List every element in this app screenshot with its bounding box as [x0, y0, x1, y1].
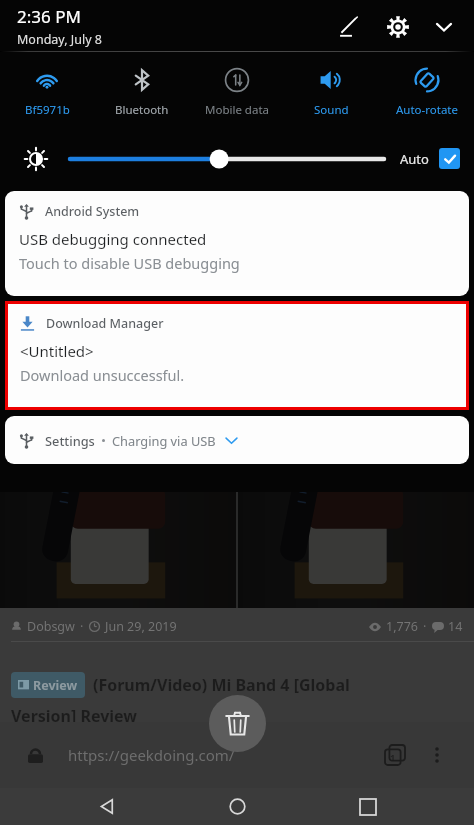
staticText: Monday, July 8	[17, 31, 102, 48]
staticText: Review	[33, 677, 78, 694]
staticText: USB debugging connected	[19, 229, 207, 249]
button[interactable]: Bluetooth	[94, 53, 189, 131]
button[interactable]: Android System	[5, 191, 469, 296]
staticText: Version] Review	[11, 705, 138, 727]
button[interactable]: Review	[11, 672, 85, 698]
button[interactable]: Bf5971b	[0, 53, 94, 131]
staticText: Dobsgw	[27, 618, 75, 635]
staticText: Download unsuccessful.	[20, 365, 185, 385]
button[interactable]: https://geekdoing.com/	[68, 745, 378, 765]
button[interactable]: Settings	[378, 7, 418, 47]
button[interactable]: Settings	[5, 416, 469, 464]
button[interactable]: Edit	[328, 7, 368, 47]
button[interactable]: Auto-rotate	[379, 53, 474, 131]
staticText: 1	[390, 751, 396, 763]
button[interactable]: Recent apps	[344, 788, 392, 825]
staticText: Android System	[45, 203, 140, 220]
staticText: Auto-rotate	[396, 102, 458, 118]
staticText: Mobile data	[205, 102, 269, 118]
staticText: Touch to disable USB debugging	[19, 253, 240, 273]
staticText: ·	[423, 618, 427, 635]
button[interactable]: Home	[213, 788, 261, 825]
button[interactable]: Sound	[284, 53, 379, 131]
staticText: Bf5971b	[25, 102, 70, 118]
button[interactable]: Download Manager	[8, 304, 466, 407]
button[interactable]: Mobile data	[189, 53, 284, 131]
staticText: <Untitled>	[20, 341, 94, 361]
staticText: https://geekdoing.com/	[68, 745, 235, 765]
staticText: Jun 29, 2019	[105, 618, 177, 635]
button[interactable]: Tabs	[378, 738, 412, 772]
button[interactable]: Site info	[22, 742, 48, 768]
button[interactable]: Brightness	[70, 145, 384, 173]
staticText: Download Manager	[46, 315, 164, 332]
staticText: Sound	[314, 102, 349, 118]
button[interactable]: Back	[83, 788, 131, 825]
staticText: ·	[80, 618, 84, 635]
staticText: 1,776	[386, 618, 418, 635]
staticText: Auto	[400, 150, 429, 168]
button[interactable]: Collapse	[424, 7, 464, 47]
staticText: 2:36 PM	[17, 5, 81, 28]
staticText: Charging via USB	[112, 432, 216, 449]
staticText: 14	[448, 618, 463, 635]
staticText: (Forum/Video) Mi Band 4 [Global	[93, 674, 350, 696]
button[interactable]: Clear all notifications	[209, 695, 266, 752]
staticText: Settings	[45, 432, 95, 449]
staticText: Bluetooth	[115, 102, 169, 118]
button[interactable]: Auto	[400, 148, 460, 169]
button[interactable]: More options	[422, 740, 452, 770]
